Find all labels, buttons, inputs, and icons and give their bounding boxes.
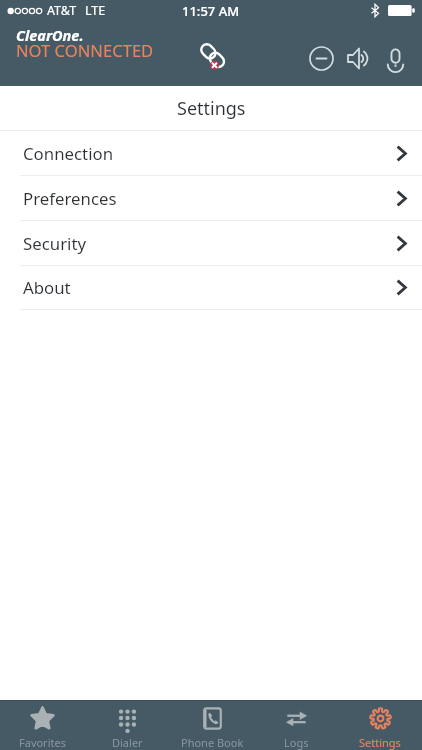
staticText: LTE <box>85 2 106 19</box>
staticText: Dialer <box>112 735 143 750</box>
button[interactable]: Microphone <box>377 41 413 77</box>
staticText: 11:57 AM <box>182 2 240 20</box>
staticText: Favorites <box>19 735 66 750</box>
button[interactable]: Connection <box>0 131 422 175</box>
button[interactable]: Preferences <box>0 176 422 220</box>
button[interactable]: Speaker <box>340 40 377 77</box>
button[interactable]: Settings <box>338 701 422 750</box>
button[interactable]: Dialer <box>85 701 170 750</box>
button[interactable]: Connection status <box>193 36 235 78</box>
staticText: Settings <box>359 735 401 750</box>
staticText: NOT CONNECTED <box>16 39 154 62</box>
staticText: Logs <box>284 735 309 750</box>
button[interactable]: About <box>0 266 422 309</box>
button[interactable]: Favorites <box>0 701 85 750</box>
button[interactable]: Logs <box>254 701 338 750</box>
button[interactable]: Phone Book <box>170 701 254 750</box>
button[interactable]: Security <box>0 221 422 265</box>
staticText: Preferences <box>23 187 117 210</box>
staticText: Connection <box>23 142 114 165</box>
staticText: Phone Book <box>181 735 244 750</box>
staticText: AT&T <box>47 2 77 19</box>
staticText: ClearOne. <box>16 25 84 45</box>
button[interactable]: Mute <box>303 40 340 77</box>
staticText: About <box>23 276 71 299</box>
staticText: Security <box>23 232 87 255</box>
staticText: Settings <box>177 96 246 121</box>
